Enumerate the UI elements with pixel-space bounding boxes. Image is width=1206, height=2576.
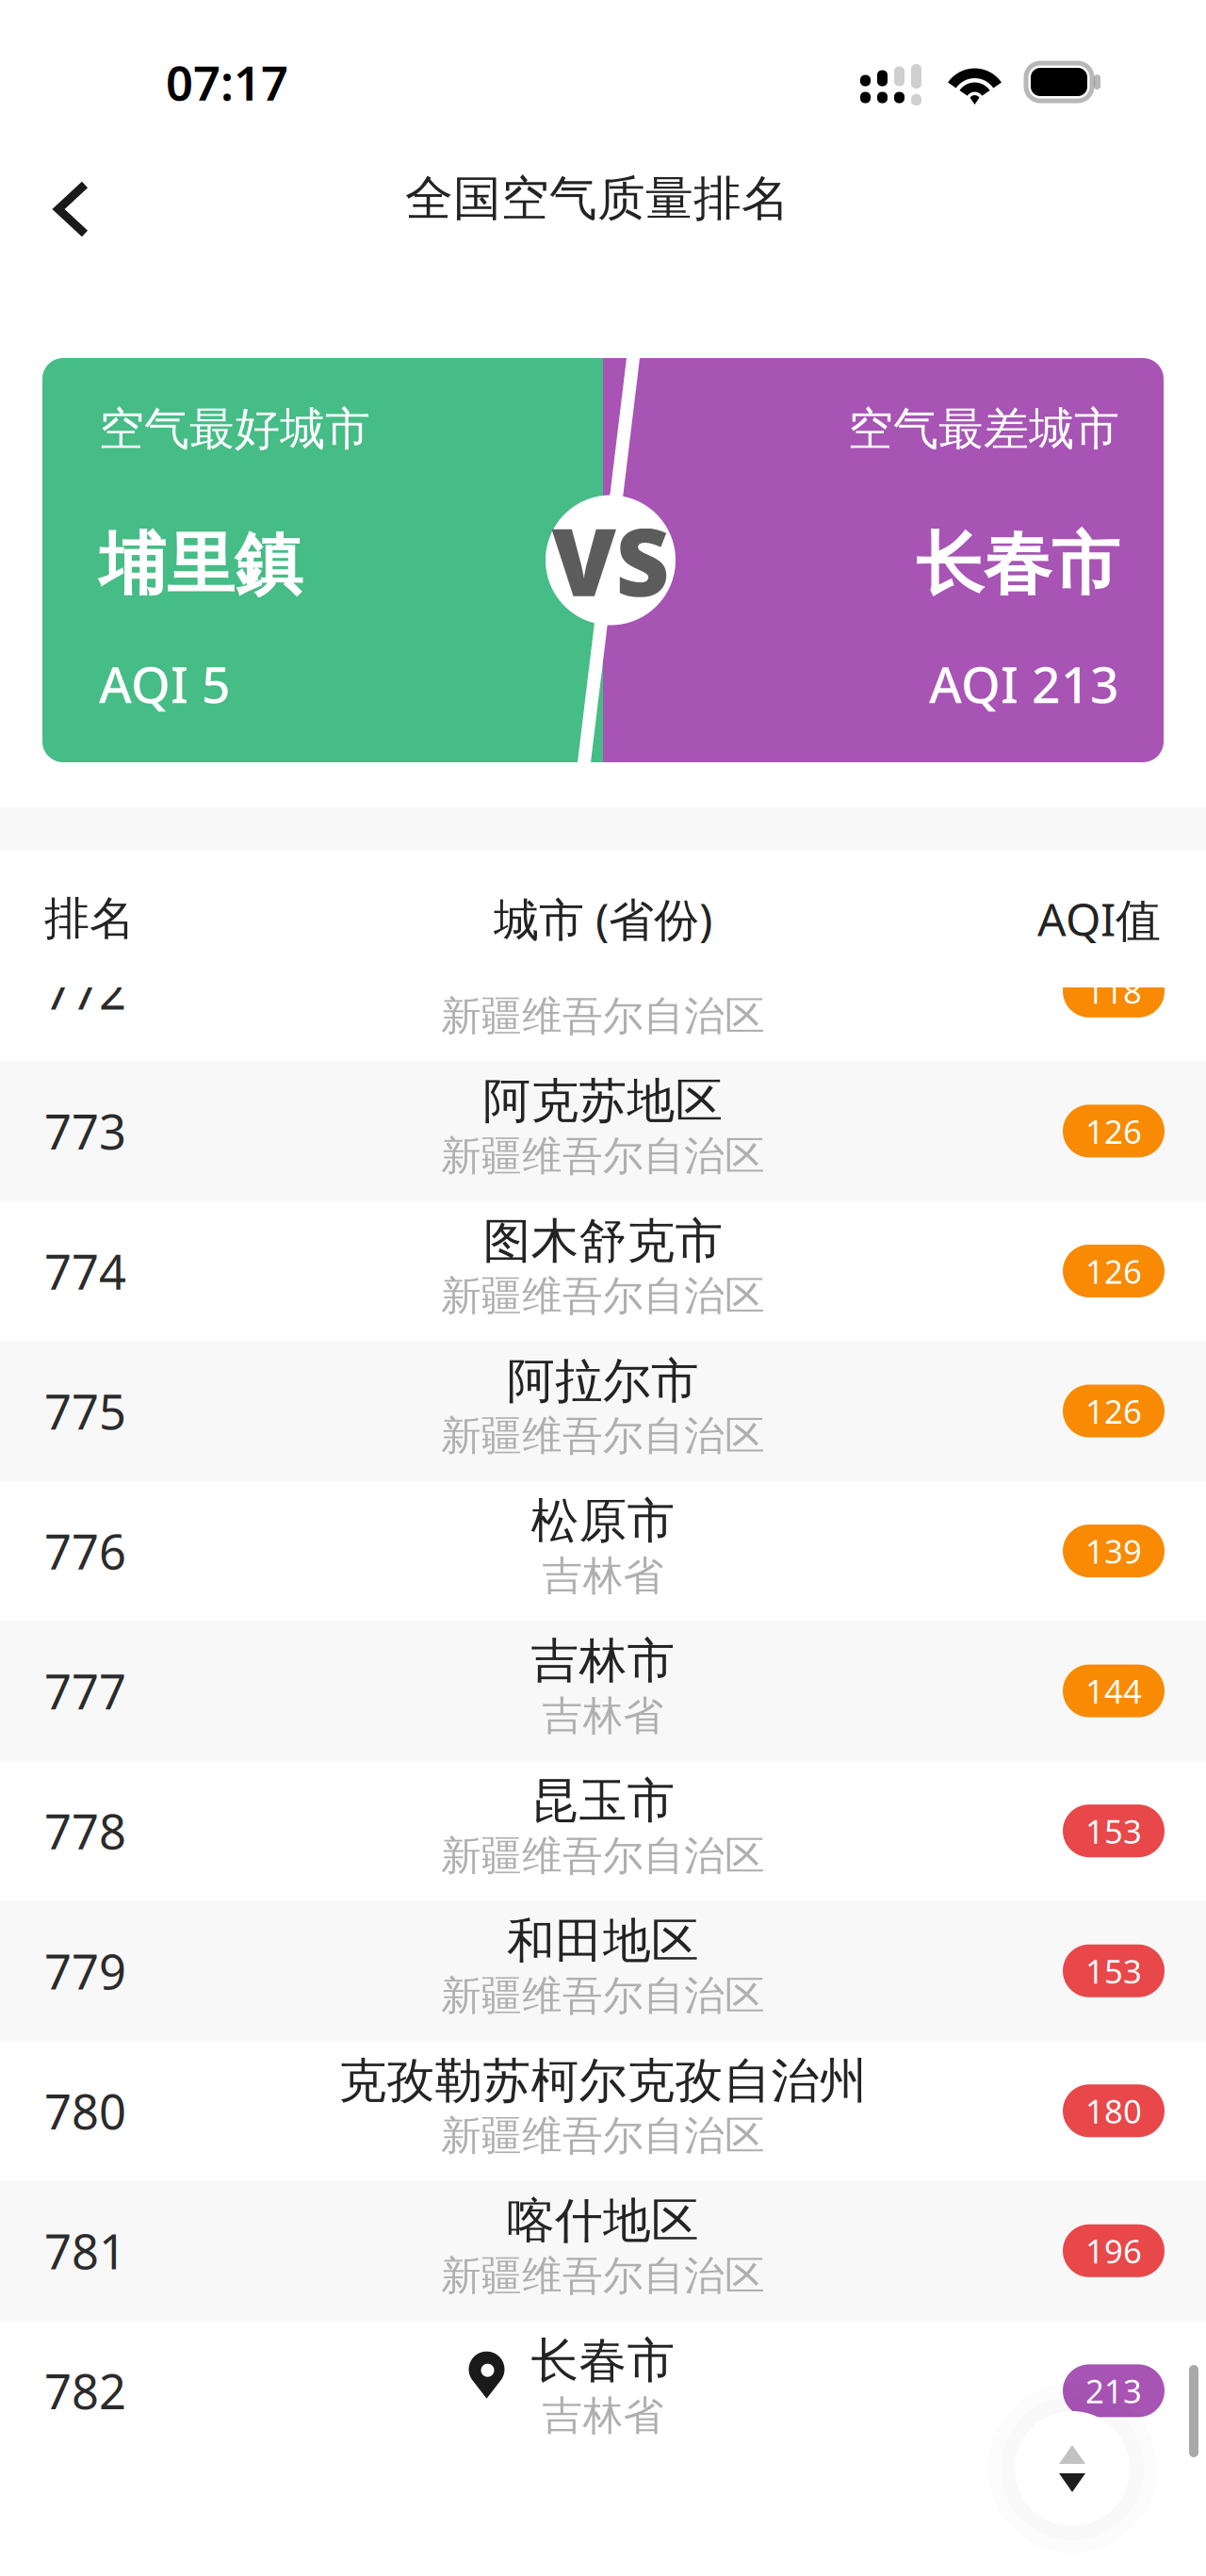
staticText: 新疆维吾尔自治区 [441, 2251, 765, 2300]
staticText: 昆玉市 [531, 1772, 675, 1830]
staticText: 喀什地区 [507, 2192, 699, 2250]
staticText: 和田地区 [507, 1912, 699, 1970]
staticText: 新疆维吾尔自治区 [441, 1971, 765, 2021]
staticText: 吉林省 [542, 2391, 664, 2441]
button[interactable]: 782 [0, 2321, 1206, 2461]
staticText: 松原市 [531, 1492, 675, 1550]
staticText: 排名 [44, 891, 135, 946]
staticText: 780 [44, 2079, 126, 2142]
staticText: 全国空气质量排名 [405, 170, 790, 228]
staticText: 139 [1085, 1529, 1142, 1573]
staticText: 吉林省 [542, 1691, 664, 1741]
staticText: 空气最好城市 [99, 401, 370, 457]
staticText: 779 [44, 1939, 126, 2003]
staticText: 180 [1085, 2089, 1142, 2133]
button[interactable]: 779 [0, 1901, 1206, 2041]
staticText: 新疆维吾尔自治区 [441, 1831, 765, 1881]
staticText: 07:17 [166, 50, 288, 114]
staticText: 773 [44, 1099, 126, 1163]
button[interactable]: 776 [0, 1481, 1206, 1621]
staticText: 埔里鎮 [99, 523, 302, 606]
staticText: 126 [1085, 1389, 1142, 1433]
staticText: 城市 (省份) [494, 889, 712, 949]
staticText: 144 [1085, 1669, 1142, 1713]
staticText: 吉林省 [542, 1551, 664, 1601]
staticText: 新疆维吾尔自治区 [441, 1131, 765, 1181]
staticText: 图木舒克市 [483, 1212, 723, 1270]
staticText: AQI 5 [99, 650, 231, 717]
button[interactable]: 快速滚动 [987, 2384, 1157, 2553]
staticText: 775 [44, 1379, 126, 1443]
staticText: 778 [44, 1799, 126, 1863]
staticText: 126 [1085, 1249, 1142, 1293]
staticText: 阿克苏地区 [483, 1072, 723, 1130]
staticText: 新疆维吾尔自治区 [441, 1411, 765, 1461]
staticText: 126 [1085, 1109, 1142, 1153]
button[interactable]: 772 [0, 921, 1206, 1061]
staticText: 克孜勒苏柯尔克孜自治州 [339, 2052, 867, 2110]
staticText: 777 [44, 1659, 126, 1723]
staticText: 博尔塔拉蒙古自治州 [387, 932, 819, 991]
button[interactable]: 778 [0, 1761, 1206, 1901]
staticText: 153 [1085, 1949, 1142, 1992]
staticText: VS [552, 498, 669, 622]
staticText: 新疆维吾尔自治区 [441, 2111, 765, 2161]
staticText: 772 [44, 959, 126, 1023]
button[interactable]: 777 [0, 1621, 1206, 1761]
staticText: 吉林市 [531, 1632, 675, 1690]
staticText: 196 [1085, 2229, 1142, 2272]
staticText: AQI 213 [929, 650, 1119, 717]
staticText: 774 [44, 1239, 126, 1303]
button[interactable]: 775 [0, 1341, 1206, 1481]
staticText: 153 [1085, 1809, 1142, 1853]
staticText: 阿拉尔市 [507, 1352, 699, 1410]
staticText: 空气最差城市 [848, 401, 1119, 457]
button[interactable]: 774 [0, 1201, 1206, 1341]
button[interactable]: 返回 [0, 145, 132, 253]
button[interactable]: 781 [0, 2181, 1206, 2321]
staticText: AQI值 [1037, 889, 1161, 949]
staticText: 781 [44, 2219, 126, 2283]
staticText: 新疆维吾尔自治区 [441, 991, 765, 1041]
staticText: 118 [1085, 969, 1142, 1013]
staticText: 长春市 [531, 2332, 675, 2390]
staticText: 213 [1085, 2369, 1142, 2412]
button[interactable]: 780 [0, 2041, 1206, 2181]
staticText: 776 [44, 1519, 126, 1583]
staticText: 新疆维吾尔自治区 [441, 1271, 765, 1321]
staticText: 长春市 [916, 523, 1119, 606]
staticText: 782 [44, 2359, 126, 2422]
button[interactable]: 773 [0, 1061, 1206, 1201]
